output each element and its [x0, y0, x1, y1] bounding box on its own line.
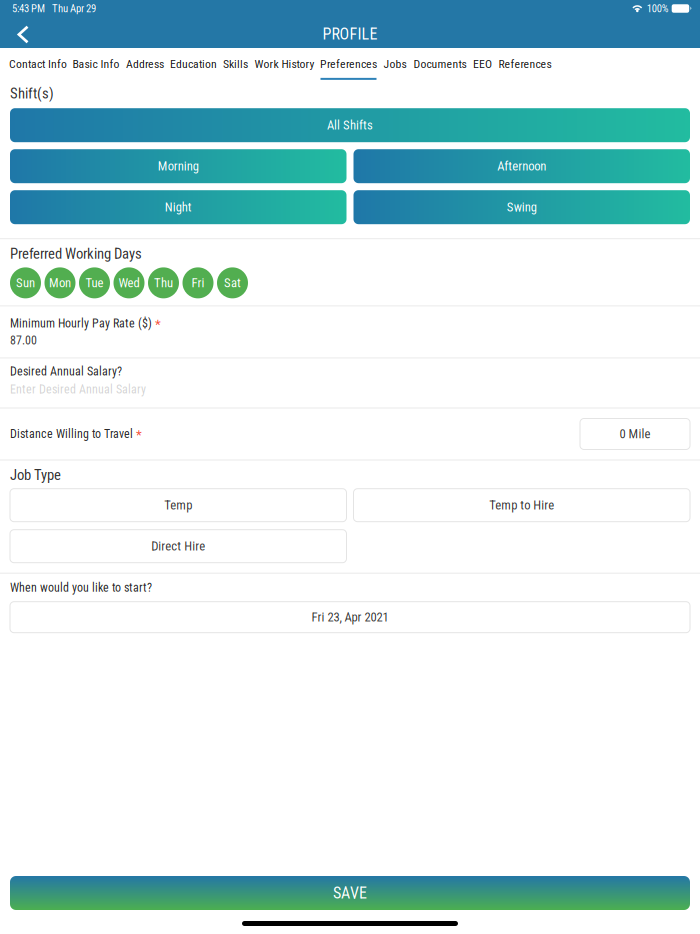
staticText: Swing: [507, 200, 537, 215]
staticText: Education: [170, 57, 217, 71]
staticText: References: [498, 57, 551, 71]
staticText: Preferences: [320, 57, 377, 71]
staticText: Desired Annual Salary?: [10, 364, 122, 378]
staticText: Fri 23, Apr 2021: [311, 610, 388, 625]
button[interactable]: Work History: [252, 48, 317, 80]
staticText: 100%: [647, 2, 669, 15]
staticText: Job Type: [10, 466, 61, 484]
button[interactable]: Night: [10, 190, 346, 224]
staticText: Night: [165, 200, 192, 215]
staticText: Tue: [85, 275, 103, 290]
staticText: Temp: [164, 498, 192, 513]
button[interactable]: EEO: [470, 48, 495, 80]
staticText: Afternoon: [497, 159, 546, 174]
button[interactable]: Sun: [10, 267, 41, 298]
button[interactable]: Morning: [10, 149, 346, 183]
staticText: Sun: [16, 275, 35, 290]
button[interactable]: Basic Info: [70, 48, 122, 80]
button[interactable]: Direct Hire: [10, 530, 346, 563]
button[interactable]: Temp to Hire: [353, 489, 690, 522]
button[interactable]: Jobs: [380, 48, 410, 80]
staticText: Distance Willing to Travel: [10, 427, 133, 441]
button[interactable]: References: [495, 48, 555, 80]
button[interactable]: Education: [168, 48, 219, 80]
staticText: Wed: [118, 275, 139, 290]
button[interactable]: Skills: [219, 48, 252, 80]
staticText: Shift(s): [10, 85, 54, 102]
staticText: Skills: [223, 57, 248, 71]
staticText: Morning: [158, 159, 199, 174]
button[interactable]: Mon: [44, 267, 75, 298]
button[interactable]: SAVE: [10, 876, 690, 910]
staticText: Fri: [191, 275, 204, 290]
staticText: Work History: [254, 57, 314, 71]
button[interactable]: Thu: [148, 267, 179, 298]
staticText: Thu Apr 29: [52, 2, 96, 15]
button[interactable]: Fri: [182, 267, 213, 298]
staticText: *: [136, 427, 142, 443]
button[interactable]: 0 Mile: [580, 418, 690, 449]
staticText: Enter Desired Annual Salary: [10, 382, 146, 396]
button[interactable]: Back: [0, 17, 41, 48]
button[interactable]: Tue: [79, 267, 110, 298]
staticText: EEO: [473, 57, 492, 71]
button[interactable]: Contact Info: [6, 48, 70, 80]
staticText: Thu: [154, 275, 173, 290]
staticText: PROFILE: [322, 25, 377, 43]
staticText: 5:43 PM: [12, 2, 45, 15]
staticText: All Shifts: [327, 118, 373, 133]
staticText: Sat: [224, 275, 241, 290]
button[interactable]: Swing: [353, 190, 690, 224]
staticText: Documents: [413, 57, 466, 71]
button[interactable]: Sat: [217, 267, 248, 298]
button[interactable]: Preferences: [317, 48, 380, 80]
staticText: *: [155, 316, 161, 332]
staticText: Direct Hire: [151, 539, 205, 554]
staticText: 87.00: [10, 333, 37, 347]
staticText: Minimum Hourly Pay Rate ($): [10, 316, 152, 330]
staticText: Preferred Working Days: [10, 245, 142, 262]
staticText: 0 Mile: [619, 427, 650, 441]
button[interactable]: Afternoon: [353, 149, 690, 183]
staticText: Basic Info: [72, 57, 119, 71]
staticText: Temp to Hire: [489, 498, 554, 513]
button[interactable]: Temp: [10, 489, 346, 522]
button[interactable]: Address: [122, 48, 168, 80]
staticText: Address: [126, 57, 164, 71]
button[interactable]: Documents: [410, 48, 470, 80]
button[interactable]: Fri 23, Apr 2021: [10, 602, 690, 633]
staticText: Jobs: [383, 57, 406, 71]
staticText: Mon: [49, 275, 71, 290]
staticText: When would you like to start?: [10, 581, 152, 595]
staticText: Contact Info: [9, 57, 67, 71]
button[interactable]: Wed: [113, 267, 144, 298]
staticText: SAVE: [333, 884, 367, 902]
button[interactable]: All Shifts: [10, 108, 690, 142]
